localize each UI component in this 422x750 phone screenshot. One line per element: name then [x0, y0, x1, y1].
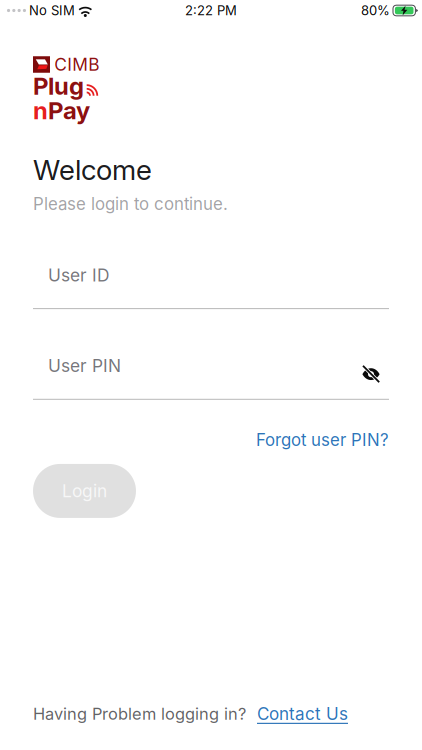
- button[interactable]: Contact Us: [246, 703, 348, 724]
- staticText: Contact Us: [257, 703, 348, 724]
- staticText: Welcome: [33, 153, 152, 187]
- button[interactable]: Login: [33, 464, 136, 518]
- staticText: 80%: [361, 3, 390, 18]
- button[interactable]: Show PIN: [362, 348, 389, 384]
- staticText: User ID: [48, 265, 110, 286]
- staticText: Please login to continue.: [33, 194, 228, 214]
- staticText: Having Problem logging in?: [33, 704, 246, 724]
- staticText: 2:22 PM: [185, 3, 237, 18]
- staticText: User PIN: [48, 355, 121, 376]
- staticText: Forgot user PIN?: [256, 430, 389, 450]
- staticText: Login: [62, 480, 107, 501]
- staticText: CIMB: [54, 54, 99, 75]
- button[interactable]: Forgot user PIN?: [256, 430, 389, 450]
- staticText: Pay: [48, 96, 90, 125]
- staticText: n: [33, 96, 48, 125]
- staticText: No SIM: [29, 3, 75, 18]
- staticText: Plug: [33, 71, 84, 100]
